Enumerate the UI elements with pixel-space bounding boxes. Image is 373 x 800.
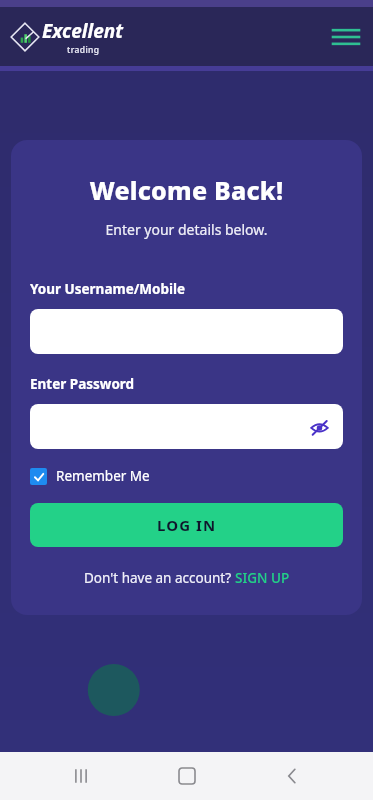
- button[interactable]: Show password: [30, 404, 343, 449]
- staticText: Welcome Back!: [30, 173, 343, 207]
- staticText: SIGN UP: [235, 569, 290, 587]
- button[interactable]: Back: [268, 752, 316, 800]
- staticText: Don't have an account?: [84, 569, 235, 587]
- button[interactable]: Excellent: [10, 18, 124, 56]
- button[interactable]: Recent apps: [57, 752, 105, 800]
- staticText: LOG IN: [157, 515, 217, 535]
- button[interactable]: Home: [163, 752, 211, 800]
- button[interactable]: SIGN UP: [235, 569, 290, 587]
- staticText: Remember Me: [56, 467, 150, 485]
- staticText: trading: [67, 44, 100, 56]
- staticText: Your Username/Mobile: [30, 280, 186, 298]
- staticText: Enter Password: [30, 375, 135, 393]
- button[interactable]: LOG IN: [30, 503, 343, 547]
- staticText: Excellent: [42, 18, 124, 44]
- button[interactable]: Show password: [307, 415, 331, 439]
- staticText: Enter your details below.: [30, 220, 343, 239]
- button[interactable]: Remember Me: [30, 467, 150, 485]
- button[interactable]: Open menu: [329, 20, 363, 54]
- button[interactable]: [30, 309, 343, 354]
